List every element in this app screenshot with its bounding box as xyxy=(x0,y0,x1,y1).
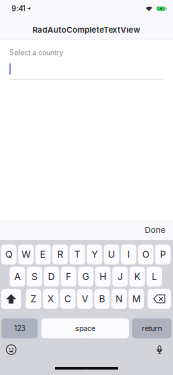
staticText: J xyxy=(117,271,122,282)
button[interactable]: Done xyxy=(137,221,173,239)
button[interactable]: U xyxy=(104,244,119,264)
button[interactable]: V xyxy=(77,289,93,309)
staticText: Q xyxy=(5,249,12,260)
button[interactable]: W xyxy=(18,244,34,264)
staticText: G xyxy=(82,271,89,282)
button[interactable]: T xyxy=(70,244,85,264)
button[interactable]: Dictation xyxy=(153,344,165,356)
button[interactable]: H xyxy=(95,267,111,287)
staticText: A xyxy=(14,271,20,282)
button[interactable]: Shift xyxy=(1,289,21,309)
staticText: RadAutoCompleteTextView xyxy=(32,25,140,34)
button[interactable]: F xyxy=(61,267,76,287)
staticText: R xyxy=(57,249,63,260)
staticText: I xyxy=(127,249,130,260)
button[interactable]: Z xyxy=(26,289,41,309)
button[interactable]: E xyxy=(35,244,51,264)
staticText: 9:41 xyxy=(11,4,25,13)
staticText: M xyxy=(132,293,140,304)
button[interactable]: Y xyxy=(87,244,102,264)
button[interactable]: Q xyxy=(1,244,16,264)
staticText: F xyxy=(66,271,72,282)
button[interactable]: return xyxy=(132,318,171,338)
staticText: N xyxy=(116,293,123,304)
staticText: D xyxy=(48,271,55,282)
button[interactable]: K xyxy=(129,267,145,287)
staticText: X xyxy=(48,293,54,304)
button[interactable]: C xyxy=(60,289,75,309)
button[interactable]: O xyxy=(138,244,153,264)
staticText: 123 xyxy=(14,324,25,333)
staticText: space xyxy=(75,324,95,333)
button[interactable]: G xyxy=(78,267,93,287)
staticText: B xyxy=(99,293,105,304)
staticText: T xyxy=(74,249,80,260)
button[interactable]: space xyxy=(41,318,129,338)
staticText: return xyxy=(142,324,162,333)
button[interactable]: X xyxy=(43,289,58,309)
button[interactable]: D xyxy=(44,267,59,287)
button[interactable]: J xyxy=(112,267,128,287)
button[interactable]: L xyxy=(147,267,162,287)
staticText: E xyxy=(40,249,46,260)
button[interactable]: A xyxy=(10,267,25,287)
button[interactable]: P xyxy=(155,244,171,264)
button[interactable]: S xyxy=(27,267,42,287)
button[interactable]: Emoji xyxy=(4,344,18,356)
staticText: V xyxy=(82,293,88,304)
staticText: Select a country xyxy=(9,48,63,57)
staticText: S xyxy=(31,271,37,282)
staticText: U xyxy=(108,249,115,260)
staticText: Z xyxy=(30,293,36,304)
button[interactable]: 123 xyxy=(1,318,38,338)
staticText: O xyxy=(142,249,149,260)
staticText: Done xyxy=(145,225,166,235)
button[interactable]: Delete xyxy=(148,289,171,309)
staticText: L xyxy=(152,271,157,282)
staticText: Y xyxy=(91,249,97,260)
button[interactable]: M xyxy=(128,289,144,309)
staticText: K xyxy=(134,271,140,282)
button[interactable]: B xyxy=(94,289,110,309)
button[interactable]: R xyxy=(52,244,68,264)
staticText: P xyxy=(160,249,166,260)
button[interactable]: N xyxy=(111,289,127,309)
staticText: W xyxy=(21,249,30,260)
staticText: H xyxy=(99,271,106,282)
staticText: C xyxy=(64,293,71,304)
button[interactable]: I xyxy=(121,244,136,264)
